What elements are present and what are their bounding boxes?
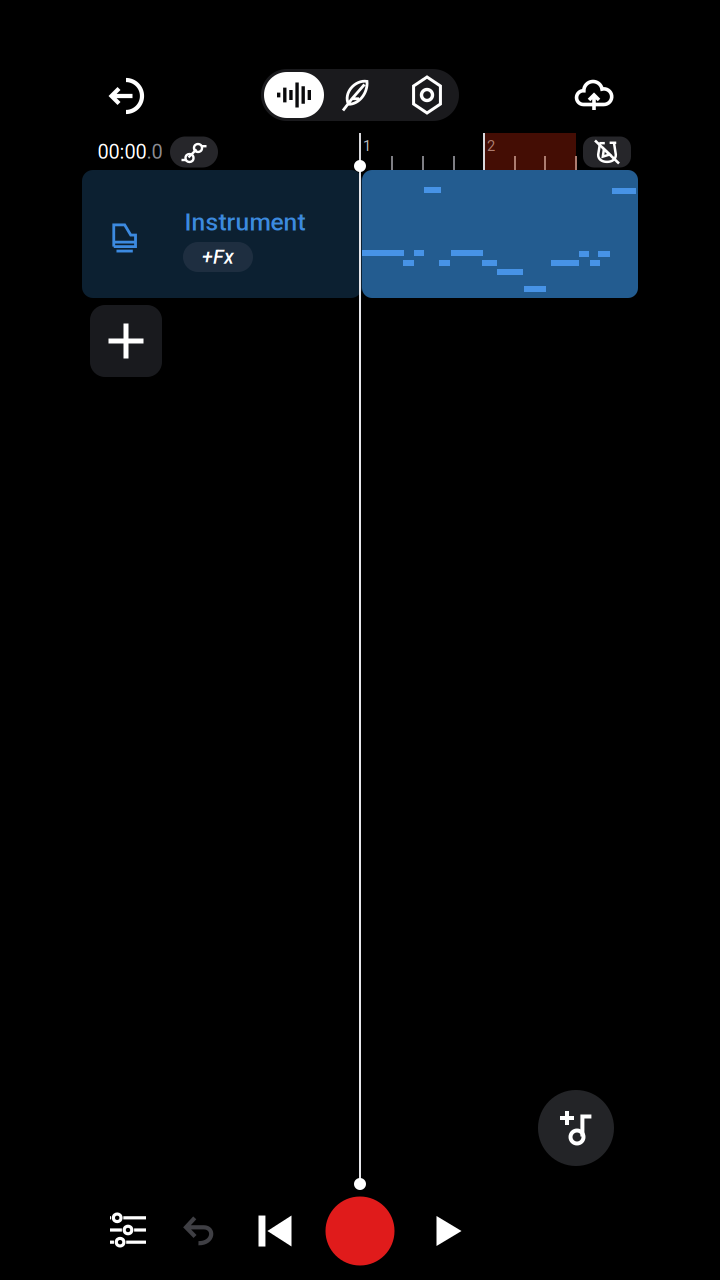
staticText: 00:00 xyxy=(97,140,146,164)
button[interactable]: Add note xyxy=(538,1090,614,1166)
button[interactable]: Back xyxy=(91,61,161,131)
button[interactable]: Play xyxy=(411,1193,487,1269)
staticText: .0 xyxy=(146,140,162,164)
staticText: 1 xyxy=(363,137,371,155)
button[interactable]: Tracks xyxy=(264,72,324,118)
button[interactable]: Instrument track xyxy=(82,170,362,298)
button[interactable]: Record xyxy=(315,1186,405,1276)
button[interactable]: Go to start xyxy=(237,1193,313,1269)
button[interactable]: Settings xyxy=(386,72,456,118)
staticText: 2 xyxy=(487,137,495,155)
button[interactable]: Mixer xyxy=(90,1192,166,1268)
button[interactable]: MIDI region xyxy=(362,170,638,298)
button[interactable]: Metronome xyxy=(583,136,631,167)
button[interactable]: Add track xyxy=(90,305,162,377)
button[interactable]: Lyrics xyxy=(324,72,386,118)
button[interactable]: Undo xyxy=(162,1192,238,1268)
button[interactable]: Automation xyxy=(170,136,218,167)
staticText: Instrument xyxy=(184,207,305,236)
button[interactable]: Upload to cloud xyxy=(559,61,629,131)
staticText: +Fx xyxy=(202,245,234,269)
